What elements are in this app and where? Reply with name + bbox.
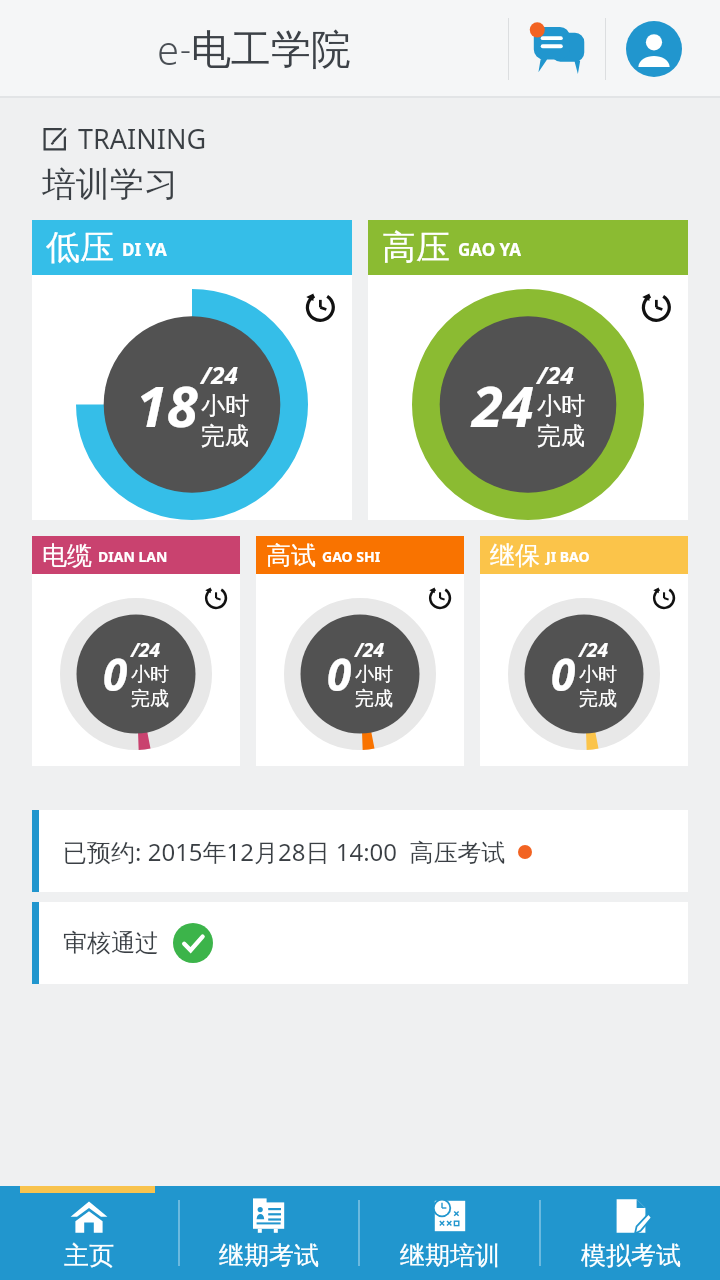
staticText: 完成 bbox=[131, 687, 169, 711]
button[interactable]: 高试 bbox=[256, 536, 464, 766]
staticText: 高压 bbox=[382, 226, 450, 269]
staticText: 小时 bbox=[201, 391, 249, 421]
button[interactable]: History bbox=[636, 287, 674, 325]
staticText: 24 bbox=[472, 367, 534, 443]
button[interactable]: History bbox=[648, 582, 678, 612]
staticText: 0 bbox=[327, 644, 352, 704]
staticText: 完成 bbox=[201, 421, 249, 451]
staticText: 培训学习 bbox=[42, 163, 178, 206]
button[interactable]: Messages bbox=[509, 0, 605, 98]
staticText: /24 bbox=[131, 637, 160, 663]
staticText: 0 bbox=[103, 644, 128, 704]
staticText: /24 bbox=[355, 637, 384, 663]
staticText: JI BAO bbox=[546, 547, 590, 566]
staticText: 主页 bbox=[64, 1240, 114, 1271]
staticText: 继期培训 bbox=[400, 1240, 500, 1271]
staticText: 高试 bbox=[266, 540, 316, 571]
staticText: 完成 bbox=[537, 421, 585, 451]
button[interactable]: 主页 bbox=[0, 1186, 178, 1280]
button[interactable]: History bbox=[200, 582, 230, 612]
button[interactable]: 继期培训 bbox=[360, 1186, 539, 1280]
staticText: 电缆 bbox=[42, 540, 92, 571]
staticText: GAO SHI bbox=[322, 547, 381, 566]
staticText: 低压 bbox=[46, 226, 114, 269]
staticText: 0 bbox=[551, 644, 576, 704]
staticText: 完成 bbox=[355, 687, 393, 711]
staticText: 电工学院 bbox=[191, 24, 351, 74]
staticText: 模拟考试 bbox=[581, 1240, 681, 1271]
staticText: 18 bbox=[136, 367, 198, 443]
staticText: 小时 bbox=[579, 663, 617, 687]
staticText: 审核通过 bbox=[63, 928, 159, 958]
staticText: GAO YA bbox=[458, 238, 521, 261]
staticText: - bbox=[180, 26, 191, 72]
button[interactable]: 继保 bbox=[480, 536, 688, 766]
staticText: 继期考试 bbox=[219, 1240, 319, 1271]
button[interactable]: 高压 bbox=[368, 220, 688, 520]
button[interactable]: 已预约: 2015年12月28日 14:00 高压考试 bbox=[32, 810, 688, 892]
staticText: /24 bbox=[201, 358, 238, 391]
button[interactable]: 继期考试 bbox=[180, 1186, 358, 1280]
staticText: TRAINING bbox=[78, 120, 207, 157]
button[interactable]: 电缆 bbox=[32, 536, 240, 766]
staticText: /24 bbox=[537, 358, 574, 391]
staticText: 继保 bbox=[490, 540, 540, 571]
button[interactable]: History bbox=[424, 582, 454, 612]
button[interactable]: 低压 bbox=[32, 220, 352, 520]
staticText: 小时 bbox=[537, 391, 585, 421]
button[interactable]: Profile bbox=[606, 0, 702, 98]
staticText: 已预约: 2015年12月28日 14:00 高压考试 bbox=[63, 835, 506, 868]
staticText: DI YA bbox=[122, 238, 167, 261]
button[interactable]: 审核通过 bbox=[32, 902, 688, 984]
staticText: 小时 bbox=[131, 663, 169, 687]
button[interactable]: History bbox=[300, 287, 338, 325]
staticText: DIAN LAN bbox=[98, 547, 168, 566]
staticText: 小时 bbox=[355, 663, 393, 687]
staticText: e bbox=[157, 22, 180, 76]
staticText: 完成 bbox=[579, 687, 617, 711]
button[interactable]: 模拟考试 bbox=[541, 1186, 720, 1280]
staticText: /24 bbox=[579, 637, 608, 663]
